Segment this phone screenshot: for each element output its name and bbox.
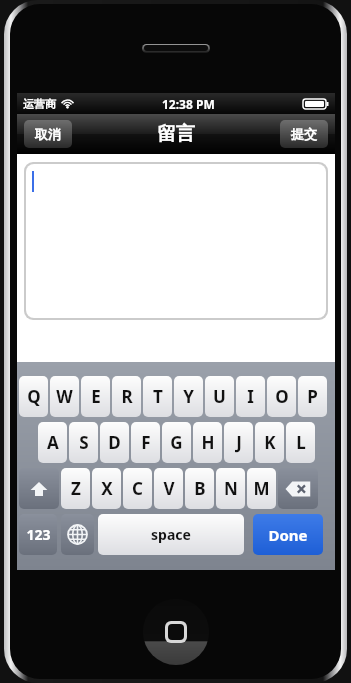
staticText: C xyxy=(132,477,143,500)
button[interactable]: A xyxy=(38,422,67,463)
staticText: N xyxy=(224,477,238,500)
button[interactable]: Done xyxy=(253,514,323,555)
button[interactable]: U xyxy=(205,376,234,417)
button[interactable]: Z xyxy=(61,468,90,509)
staticText: J xyxy=(236,431,242,454)
staticText: R xyxy=(121,385,133,408)
button[interactable]: key xyxy=(61,514,94,555)
button[interactable]: Q xyxy=(19,376,48,417)
button[interactable]: T xyxy=(143,376,172,417)
staticText: X xyxy=(101,477,113,500)
staticText: space xyxy=(151,525,191,544)
button[interactable]: G xyxy=(162,422,191,463)
staticText: M xyxy=(253,477,270,500)
button[interactable]: Home xyxy=(143,599,209,665)
button[interactable]: C xyxy=(123,468,152,509)
staticText: F xyxy=(141,431,151,454)
button[interactable]: P xyxy=(298,376,327,417)
button[interactable]: O xyxy=(267,376,296,417)
button[interactable]: 取消 xyxy=(24,120,72,148)
staticText: V xyxy=(163,477,175,500)
button[interactable]: B xyxy=(185,468,214,509)
button[interactable]: 123 xyxy=(19,514,57,555)
staticText: 取消 xyxy=(35,126,61,142)
button[interactable]: key xyxy=(278,468,318,509)
other: Change language xyxy=(67,524,88,545)
button[interactable]: R xyxy=(112,376,141,417)
button[interactable]: F xyxy=(131,422,160,463)
staticText: O xyxy=(275,385,289,408)
staticText: B xyxy=(194,477,206,500)
staticText: 12:38 PM xyxy=(162,96,215,112)
staticText: 留言 xyxy=(157,122,195,146)
other: Backspace xyxy=(285,480,311,498)
button[interactable]: Y xyxy=(174,376,203,417)
staticText: G xyxy=(170,431,183,454)
staticText: P xyxy=(307,385,318,408)
staticText: U xyxy=(213,385,226,408)
button[interactable]: I xyxy=(236,376,265,417)
staticText: I xyxy=(247,385,254,408)
button[interactable]: H xyxy=(193,422,222,463)
staticText: Done xyxy=(268,525,308,545)
staticText: 提交 xyxy=(291,126,317,142)
button[interactable]: N xyxy=(216,468,245,509)
button[interactable]: L xyxy=(286,422,315,463)
other: Shift xyxy=(29,479,49,499)
staticText: A xyxy=(47,431,59,454)
staticText: W xyxy=(56,385,73,408)
staticText: Q xyxy=(27,385,41,408)
staticText: L xyxy=(296,431,306,454)
button[interactable]: W xyxy=(50,376,79,417)
staticText: 123 xyxy=(26,525,51,544)
staticText: 运营商 xyxy=(23,97,56,111)
button[interactable]: space xyxy=(98,514,244,555)
button[interactable]: E xyxy=(81,376,110,417)
button[interactable]: V xyxy=(154,468,183,509)
button[interactable] xyxy=(26,164,326,318)
button[interactable]: S xyxy=(69,422,98,463)
staticText: K xyxy=(264,431,276,454)
staticText: Y xyxy=(183,385,194,408)
button[interactable]: D xyxy=(100,422,129,463)
staticText: T xyxy=(153,385,163,408)
staticText: Z xyxy=(71,477,81,500)
button[interactable]: key xyxy=(19,468,59,509)
button[interactable]: 提交 xyxy=(280,120,328,148)
button[interactable]: M xyxy=(247,468,276,509)
staticText: E xyxy=(91,385,101,408)
button[interactable]: X xyxy=(92,468,121,509)
staticText: D xyxy=(108,431,121,454)
staticText: H xyxy=(201,431,215,454)
button[interactable]: J xyxy=(224,422,253,463)
button[interactable]: K xyxy=(255,422,284,463)
staticText: S xyxy=(79,431,89,454)
